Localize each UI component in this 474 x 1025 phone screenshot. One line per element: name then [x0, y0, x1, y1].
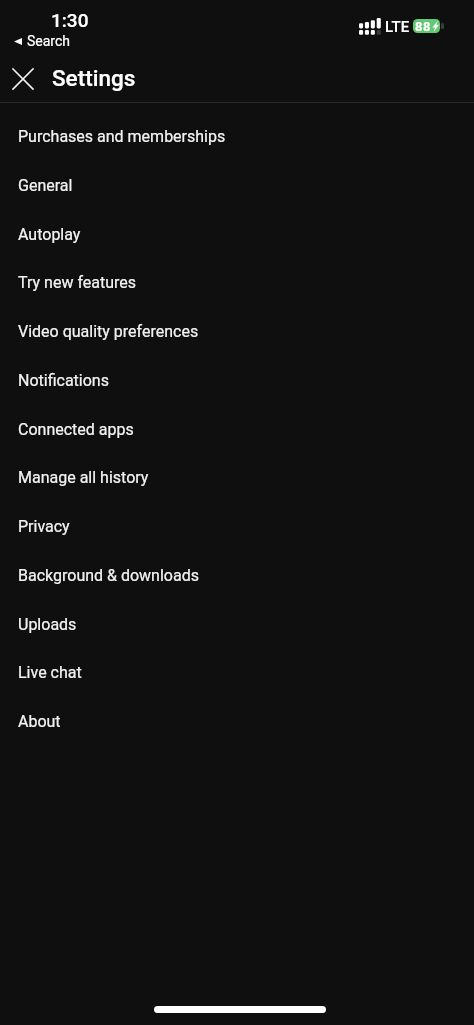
- staticText: About: [18, 712, 61, 731]
- button[interactable]: Autoplay: [0, 210, 474, 259]
- staticText: Uploads: [18, 615, 77, 634]
- staticText: Connected apps: [18, 420, 134, 439]
- staticText: Try new features: [18, 273, 137, 292]
- button[interactable]: Try new features: [0, 258, 474, 307]
- staticText: 88: [415, 19, 432, 33]
- button[interactable]: Connected apps: [0, 405, 474, 454]
- button[interactable]: Notifications: [0, 356, 474, 405]
- button[interactable]: Video quality preferences: [0, 307, 474, 356]
- button[interactable]: Purchases and memberships: [0, 112, 474, 161]
- staticText: Privacy: [18, 517, 70, 536]
- button[interactable]: About: [0, 697, 474, 746]
- button[interactable]: Uploads: [0, 600, 474, 649]
- button[interactable]: Background & downloads: [0, 551, 474, 600]
- staticText: Settings: [52, 65, 136, 91]
- button[interactable]: Manage all history: [0, 453, 474, 502]
- staticText: Search: [27, 33, 71, 49]
- staticText: Notifications: [18, 371, 109, 390]
- staticText: Background & downloads: [18, 566, 199, 585]
- staticText: Video quality preferences: [18, 322, 199, 341]
- staticText: Autoplay: [18, 225, 81, 244]
- button[interactable]: Live chat: [0, 648, 474, 697]
- staticText: Purchases and memberships: [18, 127, 226, 146]
- button[interactable]: Privacy: [0, 502, 474, 551]
- button[interactable]: General: [0, 161, 474, 210]
- staticText: Manage all history: [18, 468, 149, 487]
- staticText: General: [18, 176, 73, 195]
- staticText: 1:30: [51, 9, 89, 31]
- staticText: LTE: [385, 18, 410, 36]
- staticText: Live chat: [18, 663, 82, 682]
- button[interactable]: Close: [2, 58, 44, 100]
